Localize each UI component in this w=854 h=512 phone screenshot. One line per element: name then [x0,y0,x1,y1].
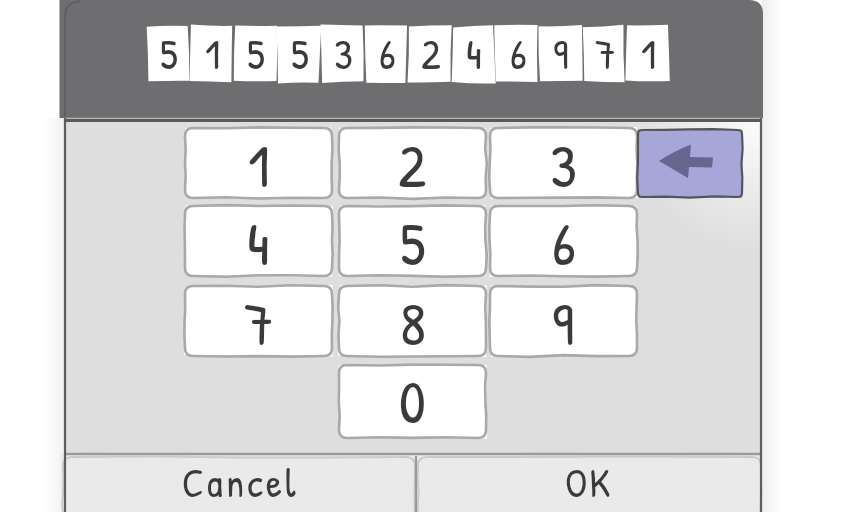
button[interactable]: Cancel [64,456,416,512]
staticText: 9 [553,25,569,81]
button[interactable]: 5 [339,206,486,276]
button[interactable]: 9 [490,286,637,356]
button[interactable]: 2 [339,128,486,198]
staticText: 1 [248,124,270,194]
staticText: 5 [291,25,309,81]
button[interactable]: OK [416,456,762,512]
staticText: 0 [399,360,426,433]
staticText: 5 [247,25,265,81]
staticText: 3 [334,25,353,81]
staticText: 2 [398,124,427,194]
staticText: 5 [400,202,426,272]
staticText: Cancel [182,455,299,509]
staticText: 6 [379,25,396,81]
button[interactable]: 4 [185,206,332,276]
button[interactable]: 3 [490,128,637,198]
button[interactable]: 8 [339,286,486,356]
staticText: 6 [552,202,576,272]
staticText: 5 [160,25,178,81]
button[interactable]: 6 [490,206,637,276]
button[interactable]: 7 [185,286,332,356]
button[interactable]: 0 [339,365,486,438]
staticText: OK [565,455,613,509]
staticText: 1 [205,25,221,81]
button[interactable]: 1 [185,128,332,198]
staticText: 1 [641,25,657,81]
staticText: 7 [244,282,274,352]
staticText: 7 [595,25,616,81]
staticText: 9 [552,282,575,352]
staticText: 4 [247,202,270,272]
staticText: 2 [421,25,441,81]
staticText: 8 [400,282,426,352]
staticText: 6 [510,25,527,81]
staticText: 4 [466,25,482,81]
staticText: 3 [550,124,577,194]
button[interactable]: Backspace [638,130,742,197]
